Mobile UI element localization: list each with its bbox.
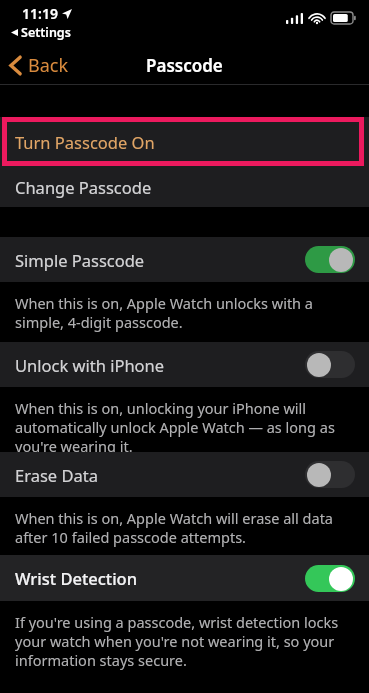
staticText: Passcode <box>146 54 223 77</box>
staticText: When this is on, unlocking your iPhone w… <box>15 398 357 452</box>
button[interactable]: Toggle on <box>305 246 355 273</box>
staticText: Erase Data <box>15 464 98 486</box>
staticText: When this is on, Apple Watch will erase … <box>15 508 357 547</box>
staticText: Simple Passcode <box>15 249 145 271</box>
button[interactable]: Unlock with iPhone <box>0 342 369 387</box>
button[interactable]: Change Passcode <box>0 166 369 207</box>
staticText: Settings <box>21 24 71 41</box>
staticText: Wrist Detection <box>15 567 138 589</box>
staticText: If you're using a passcode, wrist detect… <box>15 612 357 670</box>
staticText: When this is on, Apple Watch unlocks wit… <box>15 293 357 332</box>
staticText: Change Passcode <box>15 176 152 198</box>
button[interactable]: Toggle on <box>305 565 355 592</box>
button[interactable]: Toggle off <box>305 461 355 488</box>
staticText: Back <box>28 53 69 78</box>
button[interactable]: Erase Data <box>0 452 369 497</box>
staticText: Turn Passcode On <box>15 131 155 153</box>
button[interactable]: Back <box>0 45 81 85</box>
button[interactable]: Toggle off <box>305 351 355 378</box>
button[interactable]: Simple Passcode <box>0 237 369 282</box>
staticText: 11:19 <box>22 4 58 23</box>
button[interactable]: Wrist Detection <box>0 555 369 601</box>
staticText: Unlock with iPhone <box>15 354 165 376</box>
button[interactable]: Turn Passcode On <box>0 117 369 166</box>
